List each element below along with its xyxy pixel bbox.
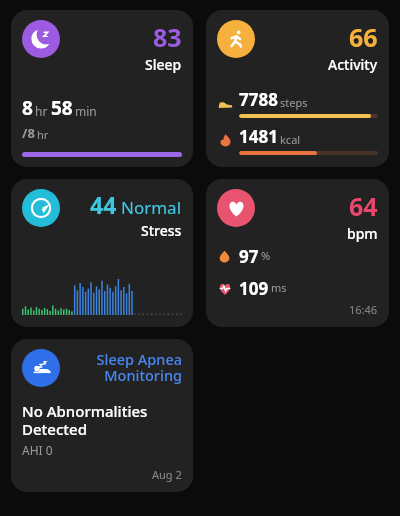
staticText: hr [35,103,48,119]
staticText: min [75,103,97,119]
button[interactable]: Sleep apnea monitoring [11,339,193,492]
staticText: /8 [22,124,35,142]
staticText: 66 [349,20,378,54]
other: Activity [217,20,255,58]
staticText: Sleep Apnea Monitoring [66,349,182,386]
other: Heart rate [217,189,255,227]
staticText: 8 [22,95,33,121]
staticText: 109 [239,277,269,300]
button[interactable]: Sleep [11,10,193,167]
other: Stress [22,189,60,227]
staticText: 16:46 [349,302,378,317]
staticText: bpm [347,224,378,243]
staticText: 64 [349,189,378,223]
staticText: steps [280,95,308,110]
staticText: Sleep [145,55,182,74]
staticText: Aug 2 [152,467,182,482]
staticText: 1481 [239,125,278,148]
staticText: Stress [141,221,182,240]
button[interactable]: Heart rate [206,179,389,327]
staticText: No Abnormalities Detected [22,401,148,439]
staticText: Normal [121,196,182,219]
staticText: % [261,248,271,263]
staticText: 97 [239,245,259,268]
other: Sleep apnea monitoring [22,349,60,387]
button[interactable]: Stress [11,179,193,327]
staticText: Activity [328,55,378,74]
staticText: hr [37,127,49,142]
button[interactable]: Activity [206,10,389,167]
staticText: 7788 [239,88,278,111]
staticText: 58 [51,95,73,121]
staticText: ms [271,280,287,295]
other: Sleep [22,20,60,58]
staticText: kcal [280,132,301,147]
staticText: 83 [153,20,182,54]
staticText: AHI 0 [22,442,53,458]
staticText: 44 [90,189,117,220]
